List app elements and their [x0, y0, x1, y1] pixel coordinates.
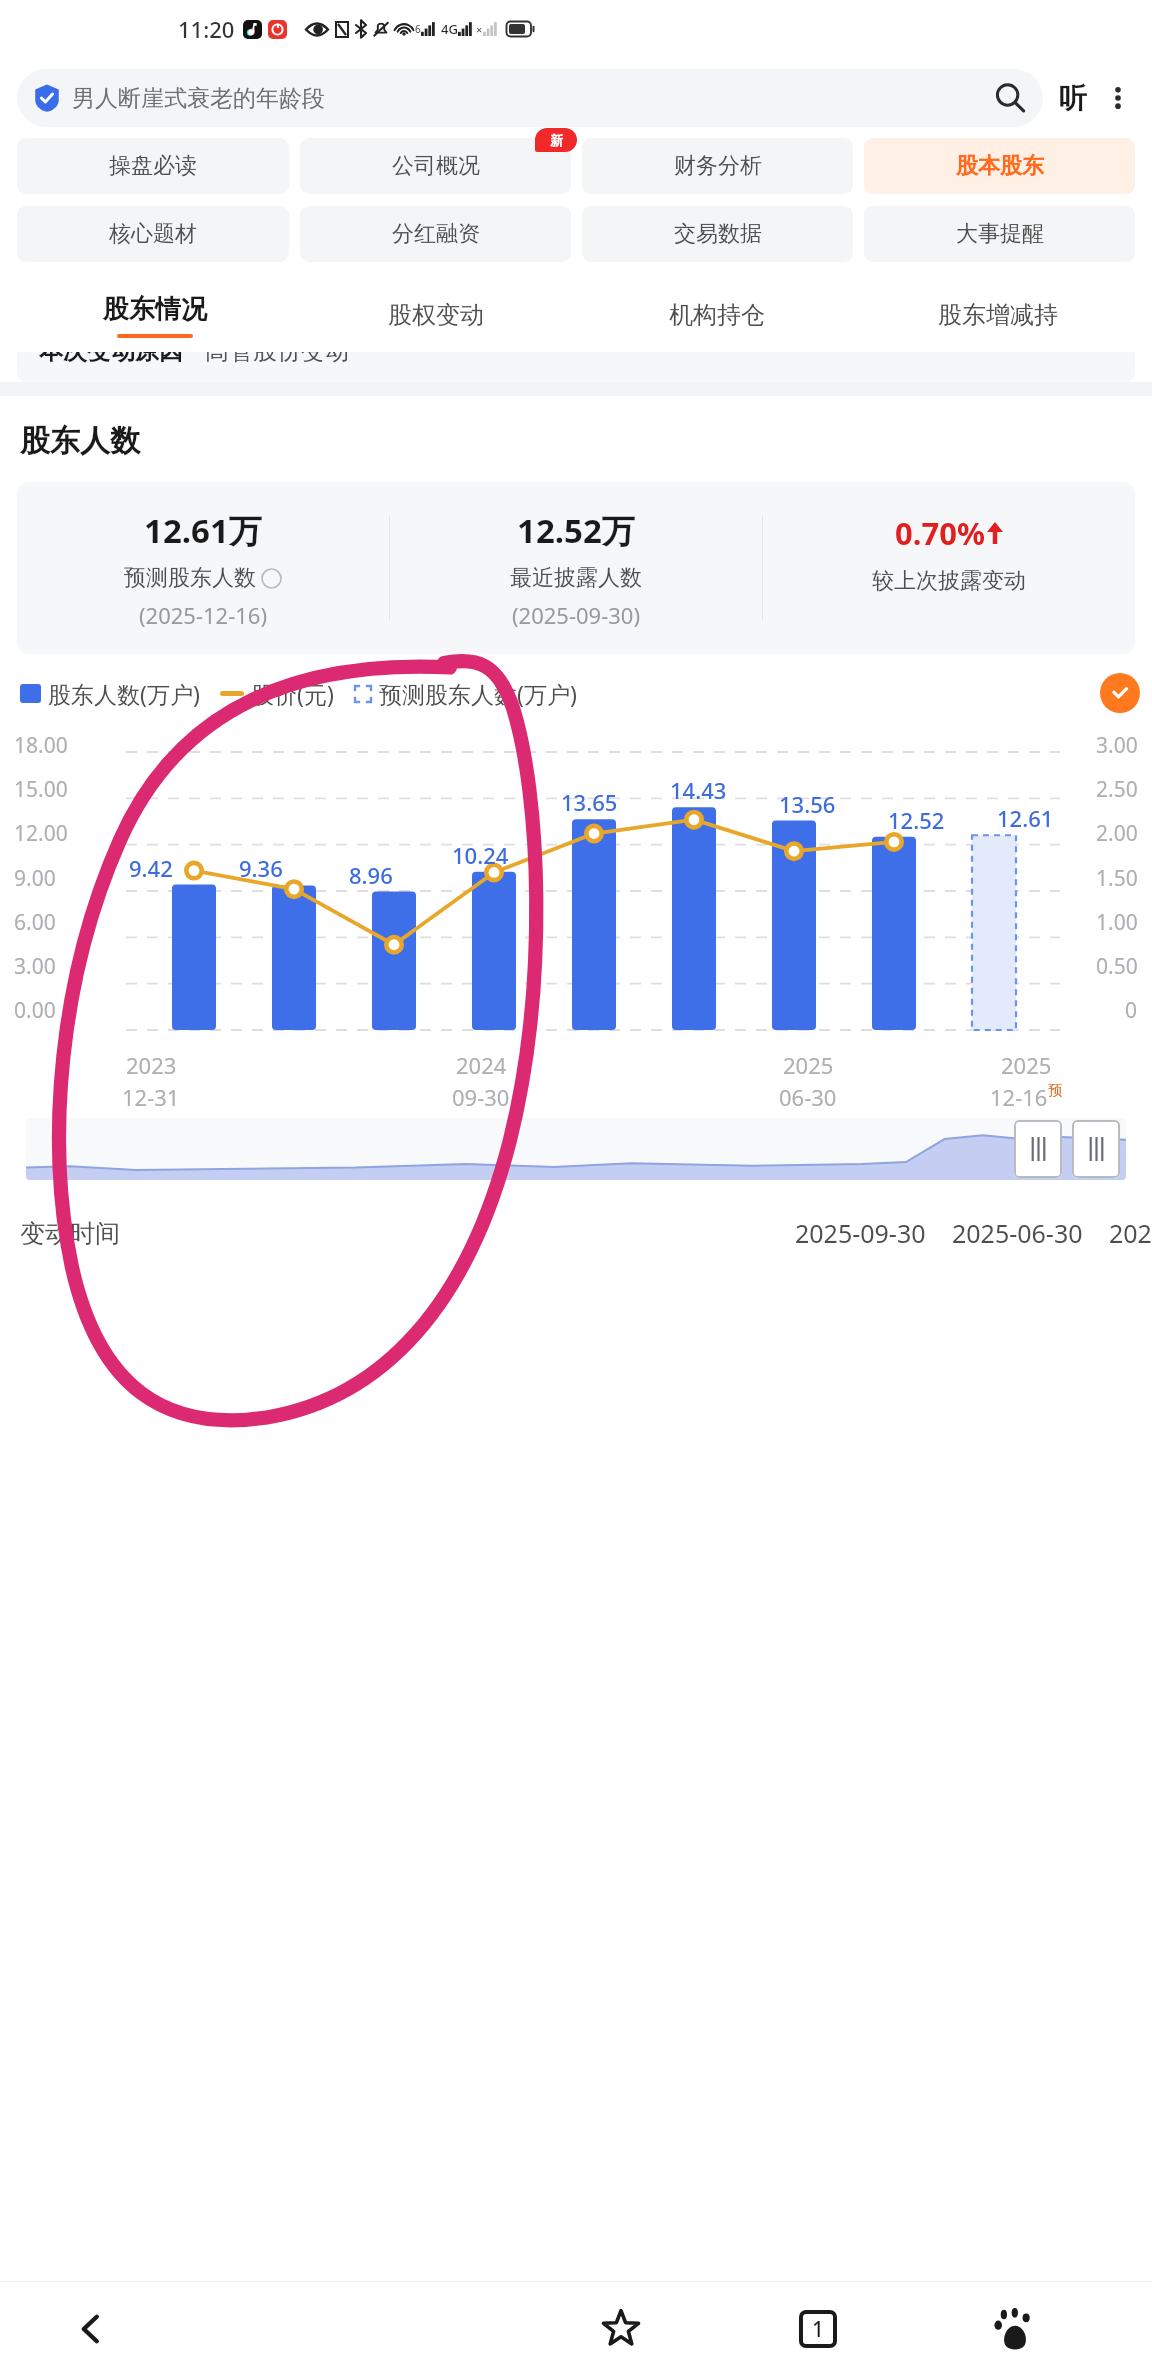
staticText: 2.00	[1096, 819, 1138, 848]
staticText: 0.70%	[895, 512, 985, 554]
staticText: 4G	[441, 20, 458, 38]
staticText: 12.00	[14, 819, 68, 848]
staticText: 14.43	[670, 775, 727, 805]
button[interactable]: 更多	[1101, 81, 1135, 115]
staticText: 6.00	[14, 908, 56, 937]
button[interactable]: 操盘必读	[17, 138, 289, 194]
staticText: 核心题材	[109, 220, 197, 248]
staticText: 18.00	[14, 731, 68, 760]
staticText: 0.50	[1096, 952, 1138, 981]
button[interactable]: 百度首页	[939, 2282, 1091, 2376]
button[interactable]: 分红融资	[300, 206, 571, 262]
staticText: 操盘必读	[109, 152, 197, 180]
staticText: 2024	[456, 1050, 507, 1080]
staticText: 9.42	[129, 853, 173, 883]
staticText: 13.56	[779, 789, 836, 819]
staticText: 股东增减持	[938, 300, 1058, 330]
staticText: 09-30	[452, 1082, 510, 1112]
staticText: 06-30	[779, 1082, 837, 1112]
button[interactable]: 核心题材	[17, 206, 289, 262]
staticText: 股权变动	[388, 300, 484, 330]
button[interactable]: 收藏	[545, 2282, 697, 2376]
button[interactable]: 搜索	[993, 81, 1027, 115]
staticText: 预	[1048, 1082, 1062, 1100]
staticText: 本次变动原因	[39, 352, 183, 366]
button[interactable]: 收起图例	[1100, 673, 1140, 713]
button[interactable]: 交易数据	[582, 206, 853, 262]
button[interactable]: 大事提醒	[864, 206, 1135, 262]
staticText: 8.96	[349, 860, 393, 890]
staticText: 202	[1109, 1216, 1152, 1250]
staticText: 2.50	[1096, 775, 1138, 804]
staticText: 机构持仓	[669, 300, 765, 330]
staticText: 1.50	[1096, 864, 1138, 893]
staticText: 股本股东	[956, 152, 1044, 180]
staticText: 11:20	[178, 14, 235, 44]
staticText: 12.61万	[144, 508, 262, 553]
staticText: 分红融资	[392, 220, 480, 248]
staticText: 男人断崖式衰老的年龄段	[72, 84, 325, 113]
staticText: (2025-12-16)	[139, 600, 268, 630]
staticText: 最近披露人数	[510, 564, 642, 592]
staticText: 9.00	[14, 864, 56, 893]
staticText: 股东情况	[103, 293, 207, 326]
staticText: 15.00	[14, 775, 68, 804]
staticText: 股价(元)	[251, 678, 334, 709]
button[interactable]: 股东增减持	[857, 278, 1138, 352]
staticText: 2025	[1001, 1050, 1052, 1080]
staticText: 财务分析	[674, 152, 762, 180]
staticText: 6	[415, 22, 421, 36]
staticText: 12.61	[997, 803, 1054, 833]
staticText: 公司概况	[392, 152, 480, 180]
button[interactable]: 股权变动	[295, 278, 576, 352]
staticText: 9.36	[239, 853, 283, 883]
staticText: 0.00	[14, 996, 56, 1025]
button[interactable]: 机构持仓	[576, 278, 857, 352]
staticText: 新	[550, 132, 563, 148]
staticText: 0	[1125, 996, 1138, 1025]
staticText: 3.00	[14, 952, 56, 981]
staticText: (2025-09-30)	[512, 600, 641, 630]
button[interactable]: 男人断崖式衰老的年龄段	[17, 69, 1043, 127]
button[interactable]: 公司概况	[300, 138, 571, 194]
staticText: 2025	[783, 1050, 834, 1080]
staticText: 2025-06-30	[952, 1216, 1083, 1250]
staticText: 10.24	[452, 840, 509, 870]
button[interactable]: 返回	[0, 2282, 181, 2376]
staticText: 12.52	[888, 805, 945, 835]
staticText: 变动时间	[20, 1218, 120, 1249]
staticText: 3.00	[1096, 731, 1138, 760]
staticText: 12-16	[990, 1082, 1048, 1112]
button[interactable]: 窗口数 1	[742, 2282, 894, 2376]
staticText: 交易数据	[674, 220, 762, 248]
button[interactable]: 股价(元)	[220, 678, 334, 709]
staticText: 预测股东人数	[124, 564, 256, 592]
staticText: 2023	[126, 1050, 177, 1080]
staticText: 听	[1059, 81, 1087, 116]
staticText: 2025-09-30	[795, 1216, 926, 1250]
button[interactable]: 预测股东人数(万户)	[354, 678, 577, 709]
button[interactable]: 听	[1056, 81, 1090, 116]
staticText: 大事提醒	[956, 220, 1044, 248]
button[interactable]: 缩放手柄	[1072, 1120, 1120, 1178]
staticText: 13.65	[561, 787, 618, 817]
staticText: 股东人数	[20, 422, 140, 460]
staticText: 1.00	[1096, 908, 1138, 937]
button[interactable]: 缩放手柄	[1014, 1120, 1062, 1178]
staticText: 较上次披露变动	[872, 567, 1026, 595]
staticText: 12.52万	[517, 508, 635, 553]
staticText: 预测股东人数(万户)	[379, 678, 577, 709]
staticText: ×	[476, 22, 483, 37]
staticText: 1	[812, 2315, 825, 2344]
button[interactable]: 股东情况	[14, 278, 295, 352]
button[interactable]: 股东人数(万户)	[20, 678, 200, 709]
button[interactable]: 股本股东	[864, 138, 1135, 194]
staticText: 高管股份变动	[205, 352, 349, 366]
staticText: 股东人数(万户)	[48, 678, 200, 709]
button[interactable]: 财务分析	[582, 138, 853, 194]
staticText: 12-31	[122, 1082, 180, 1112]
